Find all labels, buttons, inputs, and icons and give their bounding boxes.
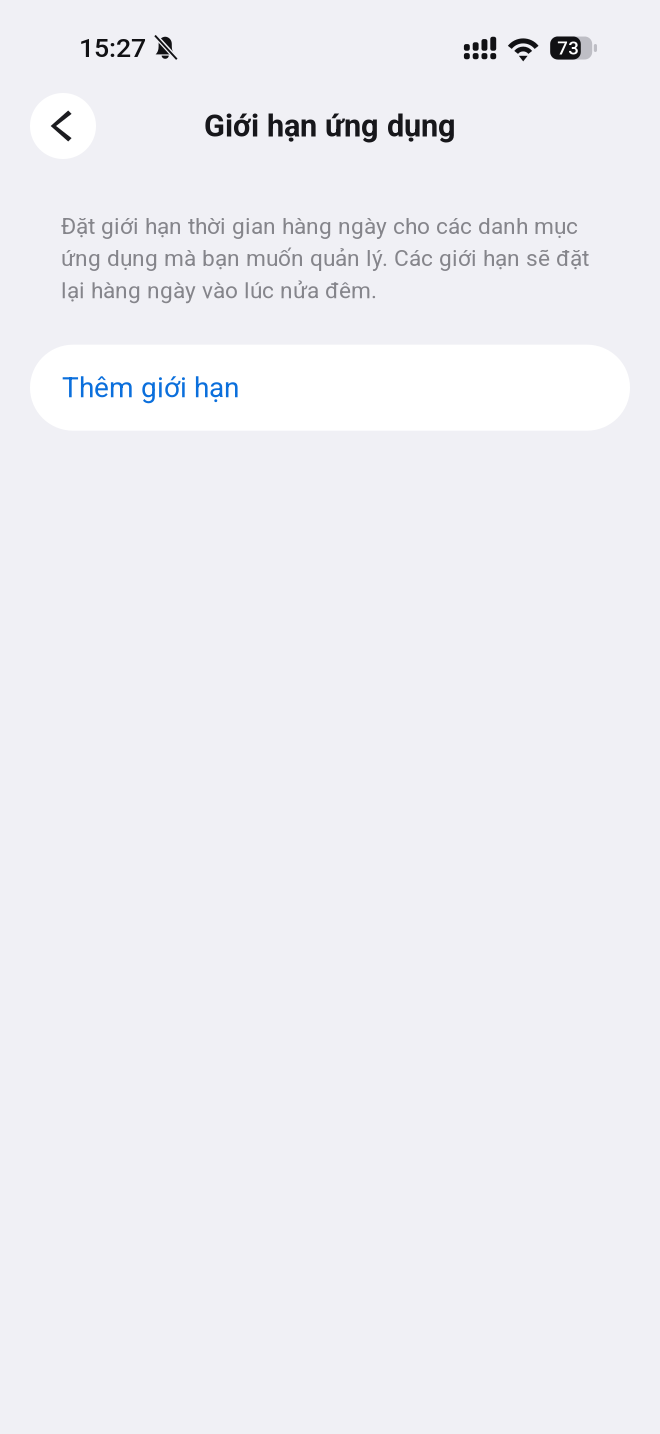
button[interactable]: Back xyxy=(30,93,96,159)
button[interactable]: Thêm giới hạn xyxy=(30,345,630,431)
staticText: Thêm giới hạn xyxy=(62,371,239,404)
staticText: 73 xyxy=(557,37,579,59)
staticText: 15:27 xyxy=(79,32,146,64)
staticText: Đặt giới hạn thời gian hàng ngày cho các… xyxy=(61,213,589,304)
staticText: Giới hạn ứng dụng xyxy=(204,108,456,144)
